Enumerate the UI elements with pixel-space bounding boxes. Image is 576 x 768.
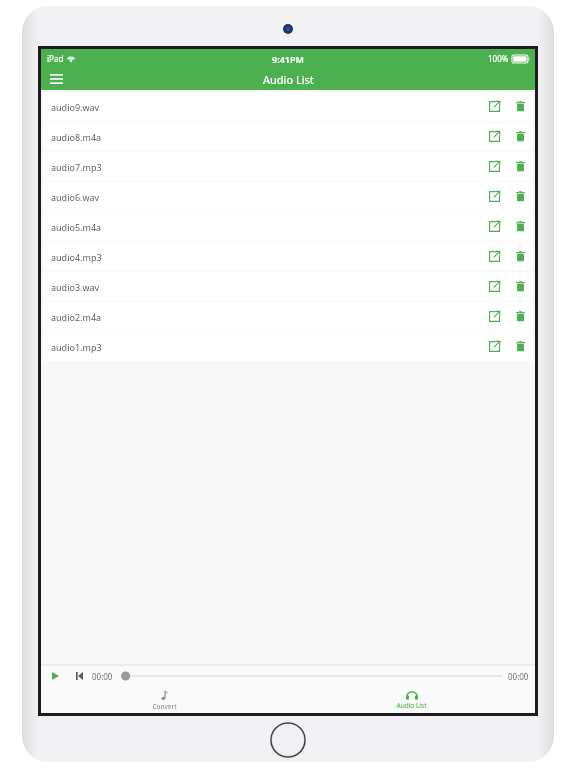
button[interactable]: Edit $name [481, 272, 507, 301]
button[interactable]: Menu [41, 68, 71, 90]
button[interactable]: Play [47, 668, 63, 684]
staticText: Convert [152, 702, 177, 711]
button[interactable]: Delete $name [507, 302, 533, 331]
button[interactable]: Edit $name [481, 122, 507, 151]
staticText: audio5.m4a [51, 221, 481, 233]
staticText: Audio List [263, 72, 314, 87]
staticText: audio7.mp3 [51, 161, 481, 173]
staticText: 9:41PM [272, 53, 304, 65]
button[interactable]: audio9.wav [43, 92, 533, 121]
staticText: audio3.wav [51, 281, 481, 293]
staticText: Audio List [396, 701, 427, 710]
button[interactable]: Delete $name [507, 122, 533, 151]
button[interactable]: Edit $name [481, 182, 507, 211]
staticText: 00:00 [92, 671, 113, 682]
button[interactable]: audio4.mp3 [43, 242, 533, 271]
button[interactable]: Edit $name [481, 332, 507, 361]
button[interactable]: Delete $name [507, 272, 533, 301]
button[interactable]: audio7.mp3 [43, 152, 533, 181]
button[interactable]: Previous [71, 668, 87, 684]
button[interactable]: audio6.wav [43, 182, 533, 211]
button[interactable]: Convert [41, 687, 288, 713]
button[interactable]: audio1.mp3 [43, 332, 533, 361]
button[interactable]: audio8.m4a [43, 122, 533, 151]
staticText: audio4.mp3 [51, 251, 481, 263]
staticText: iPad [47, 53, 64, 64]
staticText: audio9.wav [51, 101, 481, 113]
button[interactable]: audio2.m4a [43, 302, 533, 331]
staticText: audio2.m4a [51, 311, 481, 323]
button[interactable]: Delete $name [507, 212, 533, 241]
staticText: audio6.wav [51, 191, 481, 203]
button[interactable]: Delete $name [507, 152, 533, 181]
staticText: 00:00 [508, 671, 529, 682]
staticText: audio1.mp3 [51, 341, 481, 353]
button[interactable]: Edit $name [481, 212, 507, 241]
button[interactable]: Edit $name [481, 302, 507, 331]
button[interactable]: Audio List [288, 687, 535, 713]
button[interactable]: Delete $name [507, 242, 533, 271]
button[interactable]: Delete $name [507, 92, 533, 121]
button[interactable]: Delete $name [507, 182, 533, 211]
staticText: 100% [488, 53, 509, 64]
staticText: audio8.m4a [51, 131, 481, 143]
button[interactable]: Edit $name [481, 242, 507, 271]
button[interactable]: Seek [121, 668, 502, 684]
button[interactable]: audio5.m4a [43, 212, 533, 241]
button[interactable]: Delete $name [507, 332, 533, 361]
button[interactable]: Edit $name [481, 152, 507, 181]
button[interactable]: audio3.wav [43, 272, 533, 301]
button[interactable]: Edit $name [481, 92, 507, 121]
